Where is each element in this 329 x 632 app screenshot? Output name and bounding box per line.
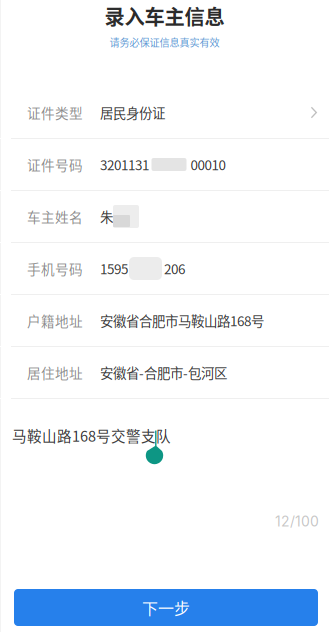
staticText: 12/100 [275,513,319,530]
staticText: 安徽省合肥市马鞍山路168号 [100,311,264,330]
staticText: 下一步 [142,596,190,619]
staticText: 居住地址 [27,363,83,382]
staticText: 3201131 [100,155,149,174]
staticText: 请务必保证信息真实有效 [109,35,219,49]
button[interactable]: 户籍地址 [0,295,329,346]
staticText: 户籍地址 [27,311,83,330]
staticText: 朱 [100,207,113,226]
button[interactable]: 下一步 [14,589,318,626]
staticText: 马鞍山路168号交警支队 [12,425,171,446]
button[interactable]: 手机号码 [0,243,329,294]
button[interactable]: 证件号码 [0,139,329,190]
staticText: 车主姓名 [27,207,83,226]
staticText: 00010 [190,155,225,174]
staticText: 手机号码 [27,259,83,278]
button[interactable]: 证件类型 [0,87,329,138]
staticText: 安徽省-合肥市-包河区 [100,363,227,382]
button[interactable]: 马鞍山路168号交警支队 [0,399,329,535]
button[interactable]: 车主姓名 [0,191,329,242]
staticText: 录入车主信息 [104,1,224,31]
staticText: 1595 [100,259,128,278]
staticText: 206 [164,259,185,278]
staticText: 证件类型 [27,103,83,122]
button[interactable]: 居住地址 [0,347,329,398]
staticText: 居民身份证 [100,103,165,122]
staticText: 证件号码 [27,155,83,174]
